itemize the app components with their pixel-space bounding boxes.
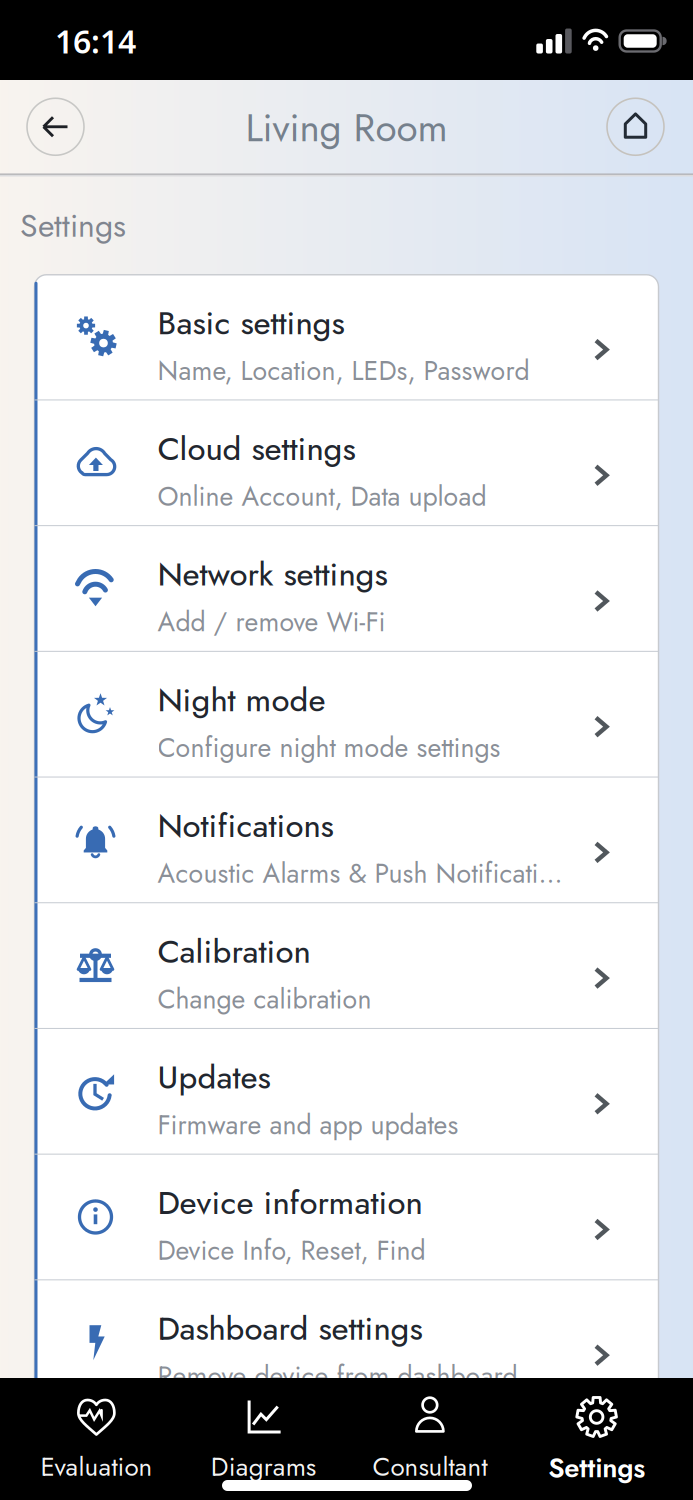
staticText: Dashboard settings xyxy=(157,1305,422,1352)
staticText: Add / remove Wi-Fi xyxy=(157,603,385,641)
button[interactable]: Device information xyxy=(34,1155,658,1279)
staticText: Device information xyxy=(157,1179,422,1226)
staticText: Diagrams xyxy=(211,1448,316,1486)
staticText: Calibration xyxy=(157,928,310,975)
staticText: Evaluation xyxy=(40,1448,152,1486)
staticText: Device Info, Reset, Find xyxy=(157,1231,425,1270)
button[interactable]: Network settings xyxy=(34,526,658,651)
staticText: Firmware and app updates xyxy=(157,1106,458,1144)
staticText: Online Account, Data upload xyxy=(157,477,486,516)
button[interactable]: Evaluation xyxy=(13,1394,180,1486)
button[interactable]: Back xyxy=(27,98,84,155)
button[interactable]: Consultant xyxy=(346,1394,513,1486)
staticText: 16:14 xyxy=(55,20,136,62)
staticText: Living Room xyxy=(245,100,447,156)
staticText: Notifications xyxy=(157,802,333,849)
button[interactable]: Diagrams xyxy=(180,1394,347,1486)
button[interactable]: Home xyxy=(607,98,664,155)
staticText: Remove device from dashboard xyxy=(157,1357,517,1395)
staticText: Change calibration xyxy=(157,980,371,1018)
staticText: Name, Location, LEDs, Password xyxy=(157,351,529,390)
button[interactable]: Settings xyxy=(513,1394,680,1487)
button[interactable]: Notifications xyxy=(34,777,658,902)
button[interactable]: Dashboard settings xyxy=(34,1280,658,1405)
staticText: Settings xyxy=(548,1448,645,1487)
button[interactable]: Night mode xyxy=(34,652,658,776)
button[interactable]: Updates xyxy=(34,1029,658,1154)
staticText: Consultant xyxy=(372,1448,487,1486)
staticText: Updates xyxy=(157,1053,270,1101)
staticText: Settings xyxy=(20,202,126,249)
button[interactable]: Basic settings xyxy=(34,275,658,399)
staticText: Configure night mode settings xyxy=(157,728,500,767)
staticText: Acoustic Alarms & Push Notificati... xyxy=(157,854,562,893)
staticText: Basic settings xyxy=(157,299,344,346)
staticText: Cloud settings xyxy=(157,425,355,472)
staticText: Night mode xyxy=(157,676,325,723)
button[interactable]: Calibration xyxy=(34,903,658,1028)
staticText: Network settings xyxy=(157,551,387,598)
button[interactable]: Cloud settings xyxy=(34,400,658,525)
